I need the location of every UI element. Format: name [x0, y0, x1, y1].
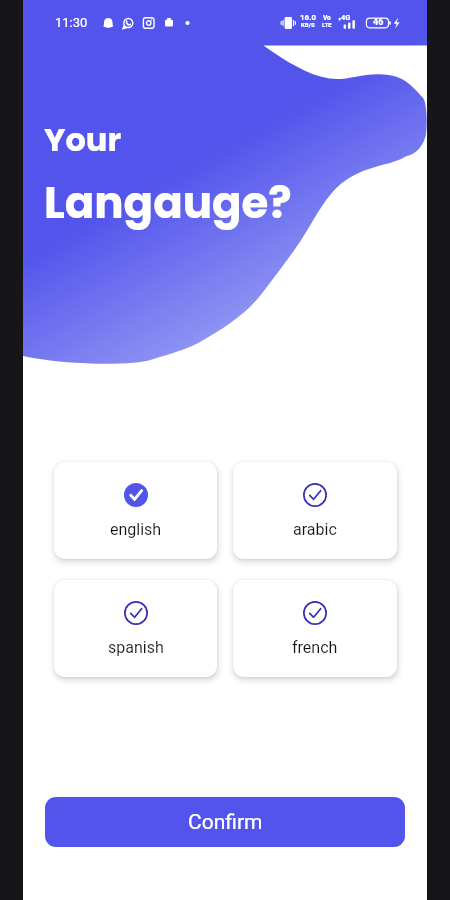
staticText: 46 [373, 17, 384, 28]
staticText: Vo [323, 14, 331, 22]
staticText: 4G [341, 13, 351, 22]
button[interactable]: french [233, 580, 397, 677]
staticText: Your [44, 117, 122, 162]
staticText: KB/S [301, 21, 315, 28]
staticText: french [292, 638, 338, 657]
staticText: 11:30 [55, 15, 88, 30]
button[interactable]: english [54, 462, 217, 559]
staticText: english [110, 520, 162, 539]
staticText: LTE [322, 21, 332, 28]
staticText: Langauge? [44, 172, 292, 233]
staticText: arabic [293, 520, 337, 539]
button[interactable]: Confirm [45, 797, 405, 847]
button[interactable]: arabic [233, 462, 397, 559]
button[interactable]: spanish [54, 580, 217, 677]
staticText: 16.0 [300, 13, 317, 22]
staticText: Confirm [188, 810, 263, 835]
staticText: spanish [108, 638, 164, 657]
